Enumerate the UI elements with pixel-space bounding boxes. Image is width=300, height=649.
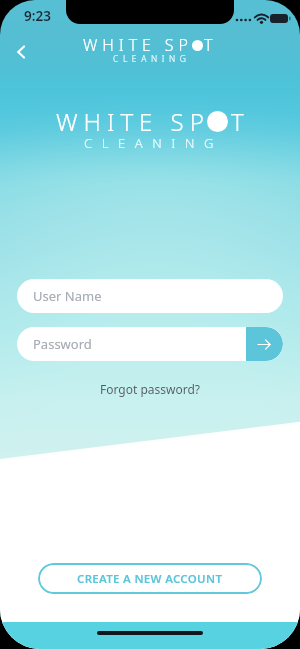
staticText: WHITE SP <box>56 105 210 138</box>
staticText: CLEANING <box>84 134 224 152</box>
staticText: CREATE A NEW ACCOUNT <box>77 571 223 587</box>
staticText: 9:23 <box>24 7 51 25</box>
button[interactable]: CREATE A NEW ACCOUNT <box>38 563 262 594</box>
staticText: User Name <box>33 287 102 305</box>
staticText: WHITE SP <box>83 34 193 56</box>
staticText: Forgot password? <box>100 381 201 397</box>
staticText: CLEANING <box>113 53 191 65</box>
button[interactable]: Forgot password? <box>100 381 201 397</box>
staticText: Password <box>33 335 92 353</box>
button[interactable]: User Name <box>17 279 283 313</box>
button[interactable]: Back <box>5 36 37 68</box>
staticText: T <box>204 34 218 56</box>
staticText: T <box>231 105 250 138</box>
button[interactable]: Log in <box>246 327 283 361</box>
